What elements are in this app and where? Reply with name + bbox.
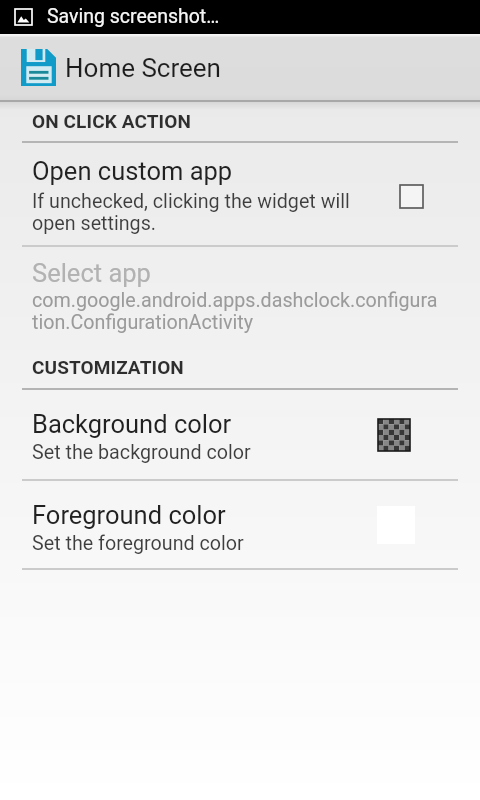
button[interactable]: Background color: [0, 409, 480, 464]
button[interactable]: Open custom app: [0, 156, 480, 235]
other: Screenshot saved: [15, 9, 32, 25]
staticText: Background color: [32, 409, 232, 439]
staticText: Select app: [32, 258, 151, 288]
button[interactable]: Save: [0, 34, 480, 100]
other: Save: [21, 49, 56, 86]
button[interactable]: Foreground color: [0, 500, 480, 555]
staticText: Set the foreground color: [32, 532, 244, 555]
staticText: Open custom app: [32, 156, 233, 186]
staticText: Set the background color: [32, 441, 251, 464]
staticText: Saving screenshot…: [47, 5, 220, 28]
button[interactable]: Open custom app: [387, 172, 435, 220]
button[interactable]: Background color: [370, 411, 418, 459]
staticText: com.google.android.apps.dashclock.config…: [32, 289, 438, 334]
staticText: If unchecked, clicking the widget will o…: [32, 190, 350, 235]
button[interactable]: Select app: [0, 258, 480, 334]
staticText: ON CLICK ACTION: [32, 110, 191, 132]
button[interactable]: Foreground color: [372, 501, 420, 549]
staticText: CUSTOMIZATION: [32, 356, 184, 378]
staticText: Foreground color: [32, 500, 226, 530]
staticText: Home Screen: [65, 53, 221, 83]
